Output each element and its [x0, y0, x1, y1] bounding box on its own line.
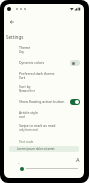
- button[interactable]: Switch on: [70, 99, 80, 105]
- staticText: A: [76, 156, 80, 164]
- button[interactable]: Switch off: [70, 60, 80, 66]
- staticText: Lorem ipsum dolor sit amet: [17, 147, 55, 151]
- button[interactable]: Article style: [4, 108, 84, 121]
- staticText: Dynamic colors: [19, 60, 45, 65]
- staticText: Text scale: [19, 140, 34, 144]
- staticText: Show floating action button: [19, 99, 65, 104]
- button[interactable]: Back: [4, 14, 20, 30]
- button[interactable]: Lorem ipsum dolor sit amet: [9, 146, 79, 152]
- staticText: card: [19, 115, 25, 119]
- button[interactable]: Show floating action button: [4, 95, 84, 108]
- staticText: Article style: [19, 110, 38, 115]
- staticText: Dark: [19, 76, 26, 80]
- staticText: Sort by: [19, 84, 31, 89]
- button[interactable]: Swipe to mark as read: [4, 121, 84, 134]
- staticText: only from end: [19, 128, 38, 132]
- staticText: Preferred dark theme: [19, 71, 55, 76]
- button[interactable]: Sort by: [4, 82, 84, 95]
- staticText: Swipe to mark as read: [19, 123, 56, 128]
- staticText: Newest first: [19, 89, 35, 93]
- button[interactable]: Theme: [4, 43, 84, 56]
- staticText: Settings: [6, 34, 24, 40]
- staticText: Theme: [19, 45, 31, 50]
- button[interactable]: Text scale slider: [4, 166, 84, 171]
- button[interactable]: Dynamic colors: [4, 56, 84, 69]
- staticText: Day: [19, 50, 25, 54]
- button[interactable]: Preferred dark theme: [4, 69, 84, 82]
- staticText: A: [18, 161, 20, 164]
